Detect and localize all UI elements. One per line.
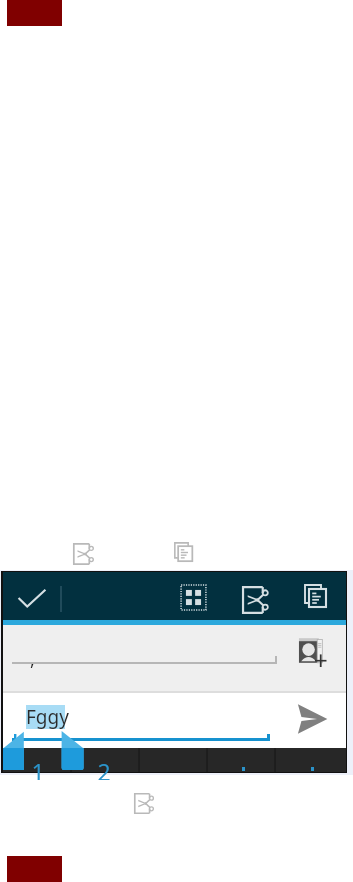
button[interactable]: Send: [296, 703, 328, 735]
button[interactable]: Done: [3, 572, 58, 620]
button[interactable]: Cut: [230, 577, 274, 615]
staticText: ,: [30, 647, 35, 672]
staticText: Fggy: [26, 704, 69, 730]
staticText: 2: [86, 756, 122, 780]
staticText: 1: [20, 756, 56, 780]
button[interactable]: Copy: [290, 577, 334, 615]
button[interactable]: Select all: [166, 577, 212, 615]
button[interactable]: Add contact: [289, 627, 337, 673]
